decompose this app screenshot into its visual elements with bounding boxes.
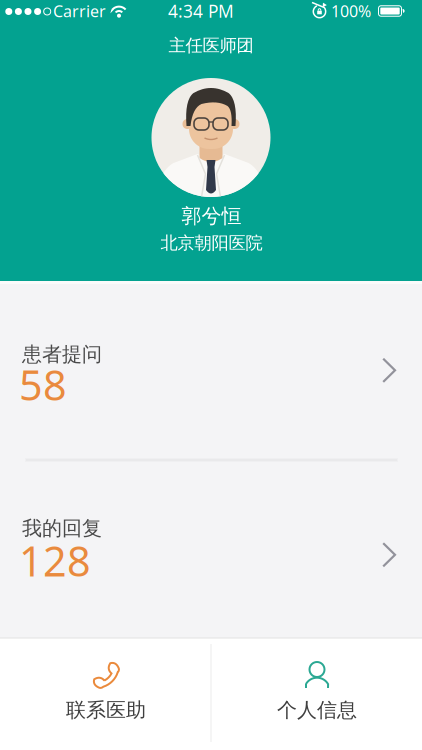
staticText: 主任医师团 — [168, 35, 253, 56]
button[interactable]: 个人信息 — [211, 638, 421, 750]
staticText: 患者提问 — [22, 342, 102, 367]
staticText: 4:34 PM — [168, 0, 234, 22]
staticText: 我的回复 — [22, 516, 102, 541]
staticText: 郭兮恒 — [181, 204, 241, 228]
staticText: 128 — [19, 533, 91, 588]
staticText: 联系医助 — [66, 698, 146, 722]
staticText: 个人信息 — [277, 698, 357, 722]
staticText: Carrier — [53, 0, 106, 22]
staticText: 北京朝阳医院 — [160, 232, 262, 254]
button[interactable]: 我的回复 — [0, 460, 422, 638]
button[interactable]: 患者提问 — [0, 281, 422, 460]
button[interactable]: 联系医助 — [0, 638, 210, 750]
staticText: 100% — [331, 0, 371, 22]
staticText: 58 — [19, 357, 67, 412]
